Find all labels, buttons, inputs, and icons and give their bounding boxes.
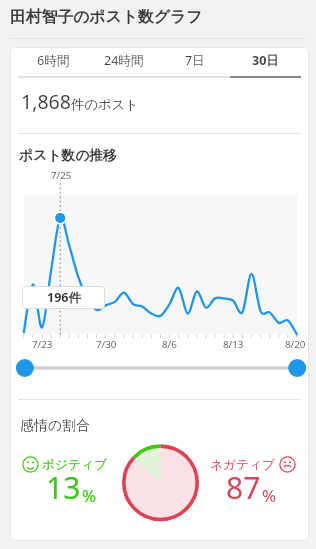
staticText: 8/13 <box>223 338 244 351</box>
staticText: 6時間 <box>37 52 70 69</box>
staticText: % <box>262 484 277 507</box>
staticText: 87 <box>226 467 261 508</box>
staticText: 1,868 <box>21 88 71 115</box>
staticText: % <box>82 484 97 507</box>
button[interactable]: ポジティブ <box>22 456 107 473</box>
button[interactable] <box>10 354 309 382</box>
staticText: ポスト数の推移 <box>19 147 117 164</box>
staticText: 24時間 <box>104 52 144 69</box>
button[interactable]: 24時間 <box>88 47 159 78</box>
staticText: 7/23 <box>32 338 53 351</box>
button[interactable]: 30日 <box>230 47 301 78</box>
staticText: 30日 <box>252 52 279 69</box>
staticText: ポジティブ <box>42 457 107 473</box>
button[interactable]: ネガティブ <box>210 456 296 473</box>
button[interactable]: 7日 <box>159 47 230 78</box>
staticText: ネガティブ <box>210 457 275 473</box>
staticText: 感情の割合 <box>20 417 90 435</box>
staticText: 件のポスト <box>71 96 139 113</box>
staticText: 7/25 <box>51 169 72 182</box>
staticText: 8/20 <box>285 338 306 351</box>
button[interactable]: 6時間 <box>18 47 88 78</box>
staticText: 7日 <box>185 52 205 69</box>
button[interactable]: 196件 <box>22 286 105 309</box>
staticText: 196件 <box>47 289 81 306</box>
staticText: 田村智子のポスト数グラフ <box>10 7 203 27</box>
staticText: 13 <box>46 467 81 508</box>
staticText: 8/6 <box>162 338 177 351</box>
staticText: 7/30 <box>96 338 117 351</box>
